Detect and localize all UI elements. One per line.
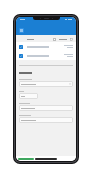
button[interactable] — [19, 81, 73, 87]
button[interactable]: Save — [18, 158, 34, 160]
button[interactable]: Open navigation menu — [19, 28, 24, 33]
button[interactable] — [19, 117, 73, 123]
button[interactable]: Column settings — [70, 38, 73, 41]
button[interactable]: Select all rows — [53, 38, 56, 41]
button[interactable] — [16, 42, 76, 51]
button[interactable] — [16, 51, 76, 60]
button[interactable] — [19, 93, 38, 99]
button[interactable]: Cancel — [35, 158, 57, 160]
button[interactable] — [19, 105, 73, 111]
